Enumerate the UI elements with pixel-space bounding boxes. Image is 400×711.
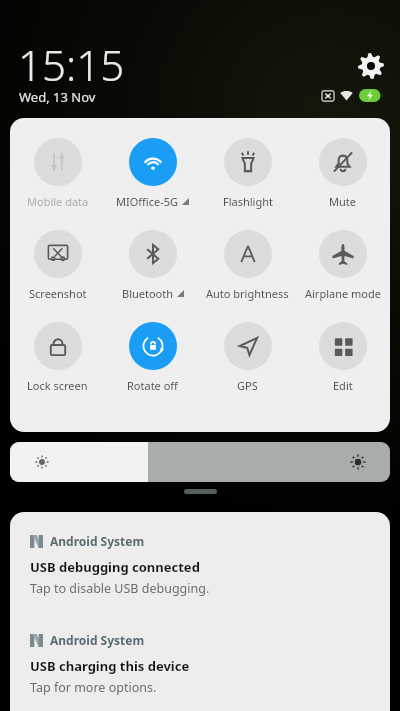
staticText: Bluetooth [122, 286, 174, 301]
staticText: Android System [50, 533, 145, 549]
staticText: Airplane mode [305, 286, 381, 301]
staticText: Mute [329, 194, 356, 209]
staticText: Tap to disable USB debugging. [30, 580, 210, 597]
staticText: Mobile data [27, 194, 89, 209]
button[interactable]: Flashlight [200, 138, 295, 209]
staticText: GPS [237, 378, 258, 393]
staticText: Edit [333, 378, 353, 393]
button[interactable]: Mobile data [10, 138, 105, 209]
button[interactable]: GPS [200, 322, 295, 393]
button[interactable]: Auto brightness [200, 230, 295, 301]
button[interactable]: Edit [295, 322, 390, 393]
button[interactable]: MIOffice-5G [105, 138, 200, 209]
button[interactable]: Android System [10, 512, 390, 611]
staticText: USB debugging connected [30, 558, 200, 576]
button[interactable]: Screenshot [10, 230, 105, 301]
button[interactable]: Rotate off [105, 322, 200, 393]
staticText: Rotate off [127, 378, 178, 393]
button[interactable]: Android System [10, 611, 390, 710]
button[interactable]: Lock screen [10, 322, 105, 393]
button[interactable]: Mute [295, 138, 390, 209]
staticText: Tap for more options. [30, 679, 157, 696]
staticText: Wed, 13 Nov [19, 88, 96, 106]
staticText: Lock screen [27, 378, 88, 393]
staticText: Screenshot [29, 286, 87, 301]
button[interactable]: Settings [358, 53, 384, 79]
button[interactable]: Bluetooth [105, 230, 200, 301]
staticText: Flashlight [223, 194, 273, 209]
button[interactable]: Airplane mode [295, 230, 390, 301]
staticText: MIOffice-5G [116, 194, 179, 209]
staticText: 15:15 [18, 36, 125, 93]
staticText: USB charging this device [30, 657, 190, 675]
staticText: Auto brightness [206, 286, 289, 301]
button[interactable]: Expand [184, 489, 217, 494]
staticText: Android System [50, 632, 145, 648]
button[interactable]: Brightness [10, 442, 390, 482]
